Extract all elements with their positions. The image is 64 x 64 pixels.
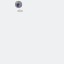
staticText: abc: [17, 8, 23, 13]
